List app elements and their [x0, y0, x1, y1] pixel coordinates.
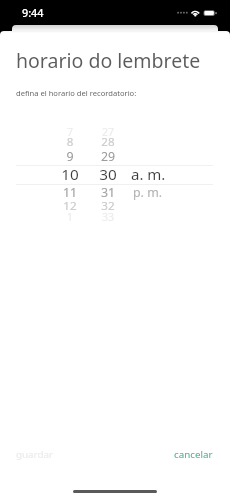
staticText: 32	[88, 198, 128, 214]
staticText: 12	[50, 198, 90, 214]
staticText: 33	[88, 210, 128, 224]
button[interactable]: guardar	[10, 441, 59, 468]
staticText: 7	[50, 125, 90, 139]
staticText: 31	[88, 184, 128, 201]
staticText: 11	[50, 184, 90, 201]
staticText: 9:44	[22, 5, 44, 20]
staticText: horario do lembrete	[16, 47, 201, 74]
staticText: 28	[88, 134, 128, 150]
staticText: cancelar	[174, 448, 213, 461]
staticText: defina el horario del recordatorio:	[16, 88, 137, 98]
staticText: 8	[50, 134, 90, 150]
staticText: 27	[88, 125, 128, 139]
staticText: a. m.	[131, 164, 166, 184]
staticText: guardar	[16, 448, 53, 461]
staticText: 10	[50, 164, 90, 185]
staticText: 30	[88, 164, 128, 185]
button[interactable]: cancelar	[168, 441, 219, 468]
staticText: p. m.	[133, 184, 163, 201]
staticText: 29	[88, 148, 128, 165]
staticText: 9	[50, 148, 90, 165]
